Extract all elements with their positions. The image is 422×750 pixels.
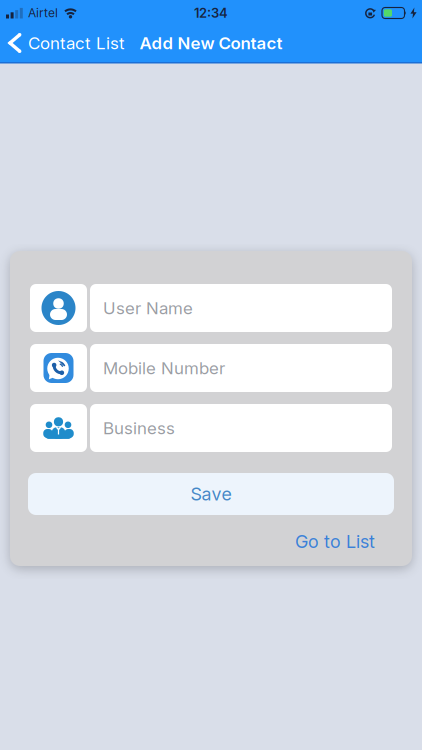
button[interactable]: Business bbox=[90, 404, 392, 452]
staticText: User Name bbox=[103, 298, 193, 318]
staticText: Business bbox=[103, 418, 175, 438]
button[interactable]: User Name bbox=[90, 284, 392, 332]
button[interactable]: Mobile Number bbox=[90, 344, 392, 392]
staticText: Mobile Number bbox=[103, 358, 225, 378]
staticText: Go to List bbox=[295, 531, 375, 552]
staticText: Save bbox=[190, 483, 231, 505]
button[interactable]: Go to List bbox=[295, 531, 375, 552]
staticText: Add New Contact bbox=[139, 33, 282, 53]
staticText: Airtel bbox=[28, 6, 58, 20]
button[interactable]: Save bbox=[28, 473, 394, 515]
button[interactable]: Contact List bbox=[7, 33, 125, 53]
staticText: Contact List bbox=[28, 33, 125, 53]
staticText: 12:34 bbox=[194, 5, 228, 21]
